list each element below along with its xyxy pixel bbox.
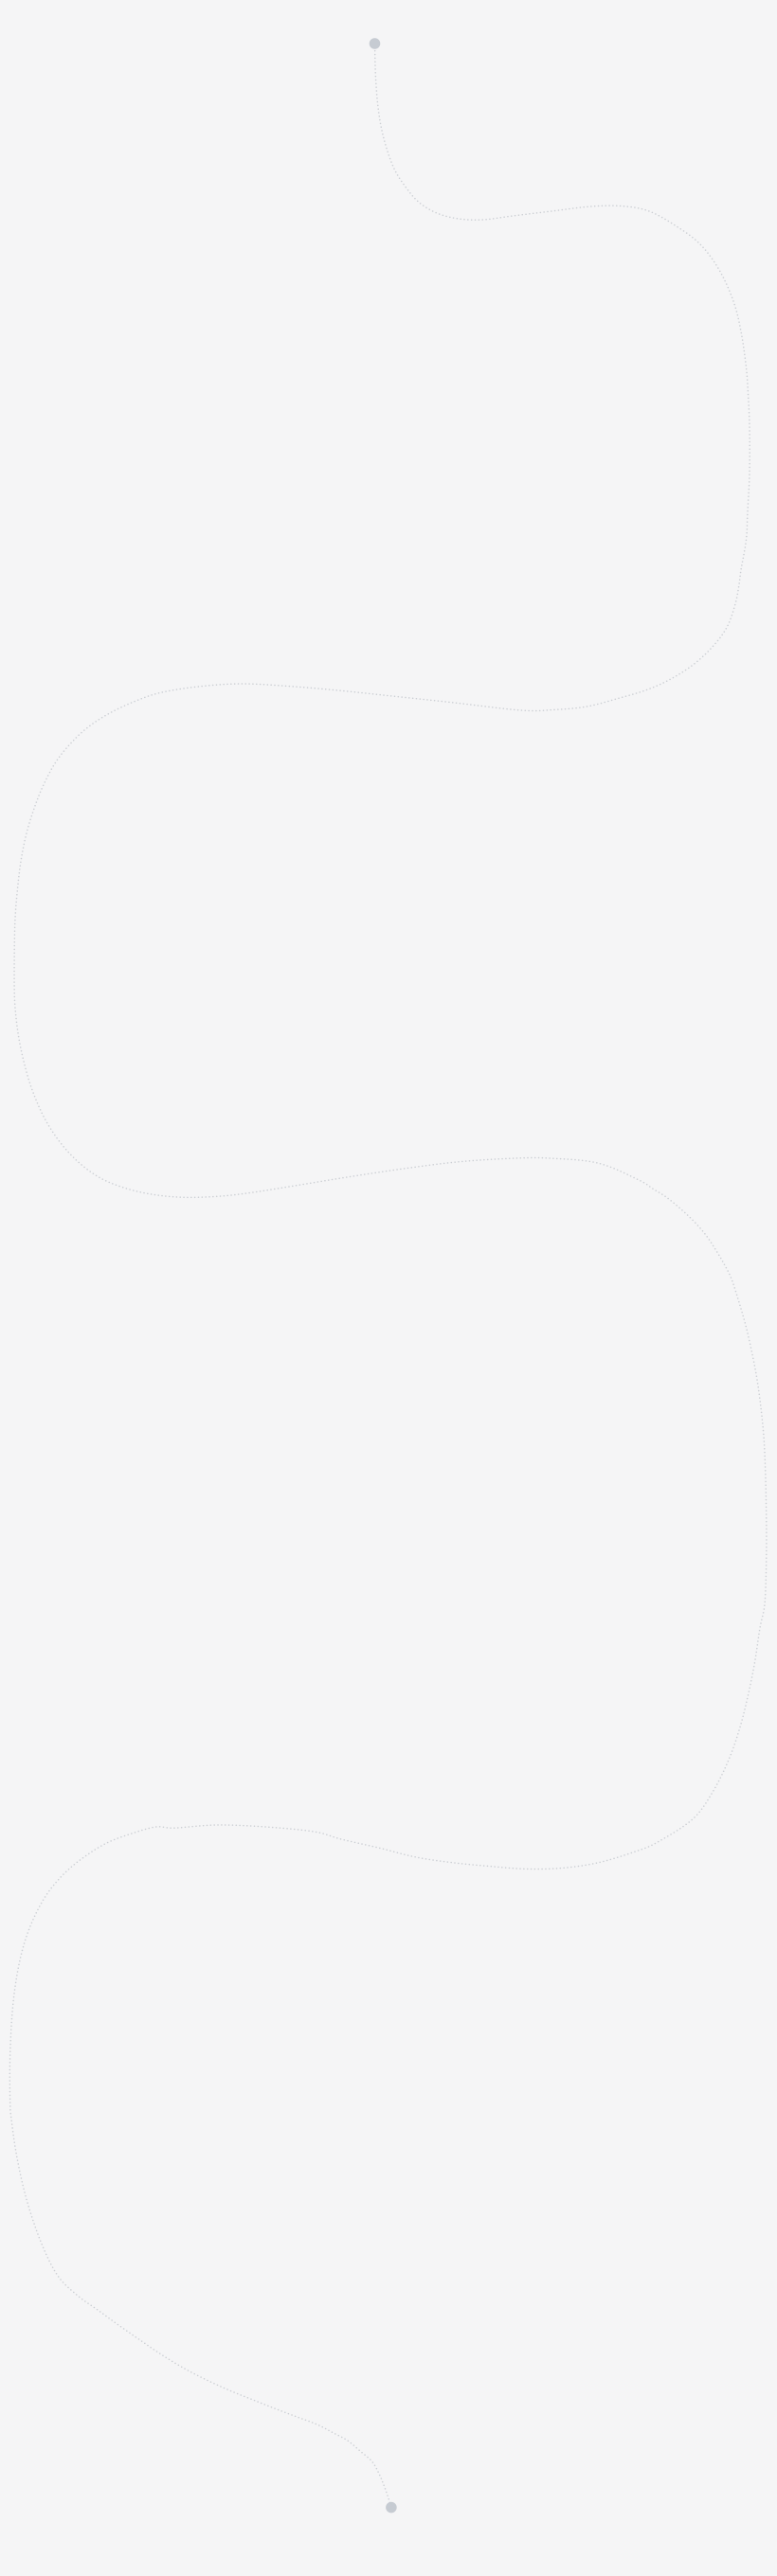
button[interactable]: Destination	[386, 2502, 397, 2513]
button[interactable]: Start	[369, 38, 380, 49]
